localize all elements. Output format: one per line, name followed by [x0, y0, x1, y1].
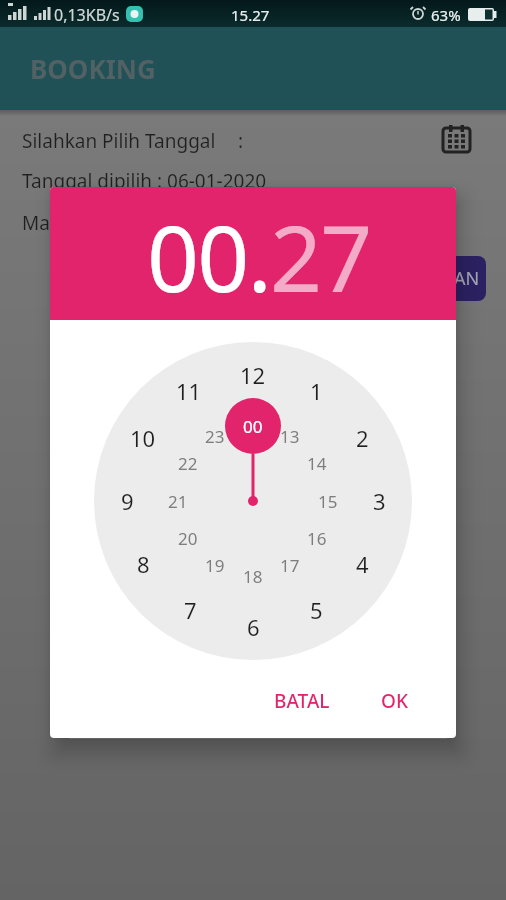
staticText: OK: [381, 688, 408, 714]
button[interactable]: BATAL: [242, 681, 362, 721]
staticText: 7: [184, 595, 197, 625]
staticText: 00.27: [147, 195, 371, 319]
staticText: 8: [137, 549, 150, 579]
staticText: 10: [130, 423, 156, 453]
staticText: 00: [243, 415, 263, 438]
staticText: BATAL: [274, 688, 330, 714]
staticText: 18: [243, 565, 263, 588]
staticText: 15: [318, 490, 338, 513]
button[interactable]: PAN: [420, 256, 486, 301]
staticText: 4: [356, 549, 369, 579]
staticText: 16: [307, 527, 327, 550]
button[interactable]: OK: [334, 681, 454, 721]
staticText: Masukkan Jam: [22, 210, 152, 236]
staticText: 19: [205, 554, 225, 577]
staticText: 15.27: [231, 5, 270, 25]
staticText: 11: [176, 376, 202, 406]
staticText: BOOKING: [30, 51, 156, 86]
staticText: Silahkan Pilih Tanggal: [22, 128, 216, 154]
staticText: 20: [178, 527, 198, 550]
staticText: 63%: [431, 5, 461, 25]
staticText: Tanggal dipilih : 06-01-2020: [22, 168, 267, 194]
staticText: 0,13KB/s: [54, 4, 120, 26]
staticText: 6: [247, 612, 260, 642]
staticText: 22: [178, 452, 198, 475]
staticText: 2: [356, 423, 369, 453]
staticText: :: [238, 128, 244, 154]
staticText: 3: [373, 486, 386, 516]
staticText: PAN: [444, 266, 480, 291]
staticText: 13: [280, 425, 300, 448]
staticText: 23: [205, 425, 225, 448]
staticText: 14: [307, 452, 327, 475]
staticText: 5: [310, 595, 323, 625]
staticText: 17: [280, 554, 300, 577]
staticText: 12: [240, 360, 266, 390]
button[interactable]: [443, 125, 470, 152]
staticText: 1: [310, 376, 323, 406]
staticText: 9: [121, 486, 134, 516]
staticText: 21: [168, 490, 188, 513]
